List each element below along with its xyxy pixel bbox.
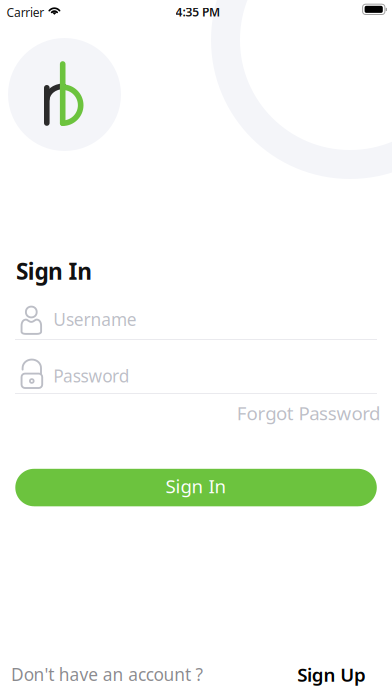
staticText: Don't have an account ? — [11, 663, 204, 686]
button[interactable]: Password — [0, 0, 392, 394]
staticText: Sign Up — [297, 662, 366, 687]
button[interactable]: Sign In — [15, 469, 377, 506]
staticText: Username — [53, 308, 137, 331]
staticText: Sign In — [16, 256, 92, 286]
staticText: 4:35 PM — [176, 4, 220, 20]
staticText: Forgot Password — [237, 400, 380, 425]
staticText: Sign In — [166, 474, 227, 498]
button[interactable]: Sign Up — [297, 662, 366, 687]
button[interactable]: Forgot Password — [237, 400, 380, 425]
button[interactable]: Username — [0, 0, 392, 340]
staticText: Password — [53, 364, 130, 387]
staticText: Carrier — [6, 4, 44, 20]
